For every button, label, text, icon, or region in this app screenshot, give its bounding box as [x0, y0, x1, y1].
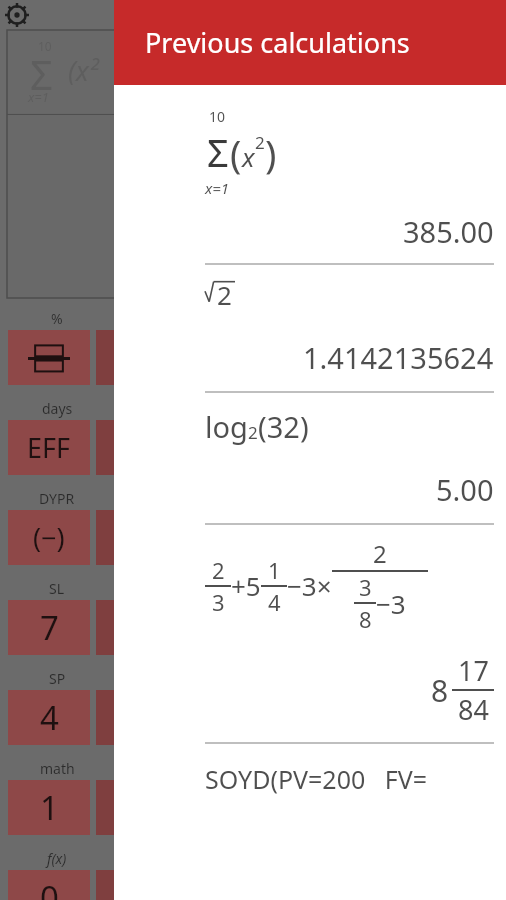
staticText: %	[51, 309, 63, 328]
staticText: x=1	[28, 88, 49, 106]
staticText: 10	[38, 38, 52, 54]
staticText: (−)	[33, 519, 65, 556]
staticText: 7	[40, 605, 59, 650]
staticText: −3×	[287, 568, 332, 603]
button[interactable]	[96, 690, 178, 745]
button[interactable]: EFF	[8, 420, 90, 475]
staticText: math	[40, 759, 75, 778]
staticText: 5.00	[436, 470, 494, 509]
staticText: 3	[212, 587, 225, 617]
staticText: 2	[217, 277, 232, 312]
staticText: Previous calculations	[145, 24, 410, 61]
staticText: DYPR	[39, 489, 75, 508]
staticText: log	[205, 407, 248, 446]
staticText: 385.00	[403, 212, 494, 251]
button[interactable]	[96, 600, 178, 655]
staticText: 2	[373, 537, 387, 570]
staticText: Σ	[207, 126, 229, 178]
button[interactable]	[96, 330, 178, 385]
button[interactable]	[96, 870, 178, 900]
staticText: 1	[268, 555, 281, 585]
button[interactable]: Previous calculations	[114, 0, 506, 85]
button[interactable]: Settings	[5, 3, 29, 27]
staticText: 8	[359, 604, 372, 634]
staticText: −3	[376, 586, 406, 621]
staticText: (32)	[258, 407, 309, 446]
staticText: days	[42, 399, 73, 418]
button[interactable]: 10	[114, 85, 506, 796]
staticText: SL	[49, 579, 65, 598]
staticText: (	[230, 127, 242, 179]
staticText: x	[242, 139, 255, 174]
staticText: 10	[209, 107, 226, 126]
button[interactable]	[8, 330, 90, 385]
staticText: 2	[255, 131, 265, 154]
button[interactable]	[96, 510, 178, 565]
staticText: x=1	[205, 178, 230, 198]
button[interactable]: 0	[8, 870, 90, 900]
staticText: EFF	[27, 429, 71, 466]
staticText: 0	[40, 875, 59, 900]
staticText: )	[265, 127, 277, 179]
button[interactable]: 7	[8, 600, 90, 655]
button[interactable]	[96, 420, 178, 475]
staticText: 4	[40, 695, 59, 740]
staticText: 2	[212, 555, 225, 585]
staticText: 3	[359, 572, 372, 602]
staticText: 2	[248, 421, 258, 444]
staticText: 4	[268, 587, 281, 617]
staticText: 17	[458, 652, 489, 689]
staticText: 84	[458, 691, 489, 728]
staticText: +5	[231, 568, 261, 603]
button[interactable]: 4	[8, 690, 90, 745]
staticText: 8	[431, 670, 449, 711]
staticText: (x²	[68, 52, 99, 89]
button[interactable]	[96, 780, 178, 835]
button[interactable]: 1	[8, 780, 90, 835]
staticText: 1.4142135624	[303, 338, 494, 377]
staticText: 1	[40, 785, 59, 830]
staticText: f(x)	[47, 849, 67, 868]
button[interactable]: (−)	[8, 510, 90, 565]
staticText: SP	[49, 669, 66, 688]
staticText: SOYD(PV=200 FV=	[205, 762, 428, 796]
staticText: Σ	[30, 47, 53, 101]
